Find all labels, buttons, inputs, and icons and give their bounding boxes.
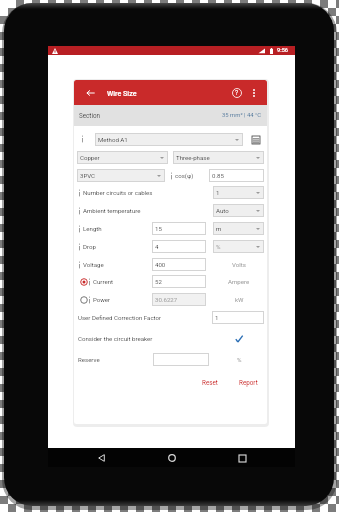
button[interactable]: %	[213, 240, 264, 253]
staticText: Method A1	[98, 136, 128, 143]
staticText: Ambient temperature	[83, 207, 141, 214]
staticText: Voltage	[83, 261, 104, 268]
staticText: Length	[83, 225, 102, 232]
button[interactable]: Tables	[249, 133, 262, 146]
staticText: 4	[155, 243, 159, 250]
staticText: 30.6227	[155, 296, 178, 303]
staticText: Current	[93, 278, 113, 285]
staticText: Power	[93, 296, 111, 303]
staticText: kW	[235, 296, 244, 303]
staticText: m	[216, 225, 222, 232]
staticText: cos(φ)	[175, 172, 194, 179]
staticText: 52	[155, 278, 162, 285]
staticText: Wire Size	[107, 89, 137, 97]
button[interactable]: 1	[212, 311, 264, 324]
button[interactable]: 30.6227	[152, 293, 206, 306]
staticText: Reserve	[78, 356, 100, 363]
button[interactable]: Recent apps	[233, 449, 251, 467]
staticText: Copper	[80, 154, 100, 161]
staticText: Volts	[232, 261, 246, 268]
button[interactable]: Reset	[199, 376, 221, 389]
staticText: %	[237, 356, 242, 363]
button[interactable]: Home	[163, 449, 181, 467]
button[interactable]: Method A1	[95, 133, 243, 146]
button[interactable]: 0.85	[209, 169, 264, 182]
staticText: Section	[79, 112, 101, 119]
button[interactable]: 400	[152, 258, 206, 271]
button[interactable]: 1	[213, 186, 264, 199]
button[interactable]: More options	[246, 85, 262, 101]
staticText: Consider the circuit breaker	[78, 335, 153, 342]
staticText: 0.85	[212, 172, 224, 179]
button[interactable]: Navigate up	[82, 85, 98, 101]
button[interactable]: m	[213, 222, 264, 235]
button[interactable]: Back	[92, 449, 110, 467]
staticText: 9:56	[277, 47, 289, 54]
staticText: %	[216, 243, 221, 250]
staticText: Number circuits or cables	[83, 189, 153, 196]
staticText: ?	[235, 89, 239, 97]
staticText: 3PVC	[80, 172, 96, 179]
staticText: Ampere	[228, 278, 250, 285]
button[interactable]	[153, 353, 209, 366]
button[interactable]: Consider the circuit breaker	[232, 332, 245, 345]
staticText: Drop	[83, 243, 96, 250]
button[interactable]: Help	[229, 85, 245, 101]
staticText: 15	[155, 225, 162, 232]
staticText: Three-phase	[176, 154, 210, 161]
staticText: 1	[215, 314, 219, 321]
button[interactable]: 52	[152, 275, 206, 288]
staticText: Report	[239, 379, 258, 386]
button[interactable]: 15	[152, 222, 206, 235]
button[interactable]: Auto	[213, 204, 264, 217]
button[interactable]: Three-phase	[173, 151, 264, 164]
button[interactable]: Current	[77, 275, 90, 288]
staticText: Auto	[216, 207, 229, 214]
button[interactable]: Power	[77, 293, 90, 306]
staticText: Reset	[202, 379, 218, 386]
button[interactable]: 3PVC	[77, 169, 165, 182]
button[interactable]: Copper	[77, 151, 168, 164]
staticText: 1	[216, 189, 220, 196]
button[interactable]: 4	[152, 240, 206, 253]
staticText: 400	[155, 261, 166, 268]
button[interactable]: Report	[236, 376, 261, 389]
staticText: 35 mm² | 44 °C	[222, 112, 262, 119]
staticText: User Defined Correction Factor	[78, 314, 162, 321]
